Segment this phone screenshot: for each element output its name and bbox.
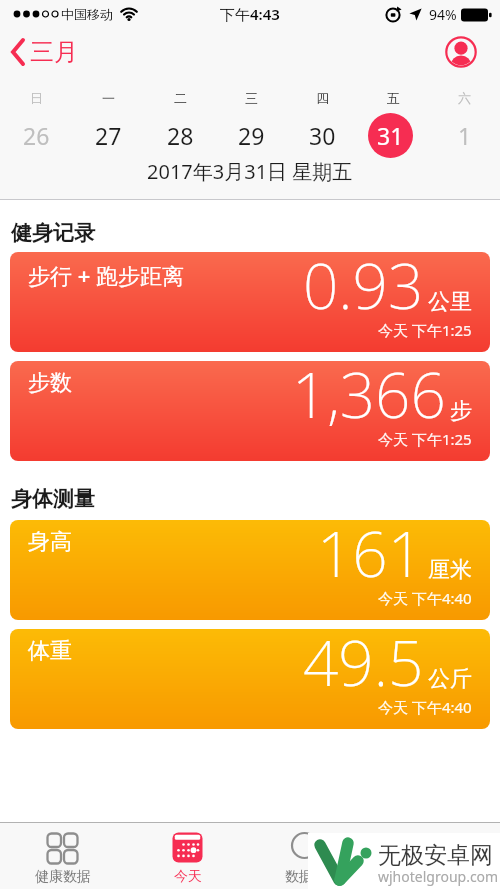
staticText: 三月 — [30, 37, 78, 67]
button[interactable]: 今天 — [125, 823, 250, 889]
button[interactable]: 健康数据 — [0, 823, 125, 889]
staticText: 下午4:43 — [220, 4, 280, 24]
staticText: 中国移动 — [61, 6, 113, 22]
staticText: 27 — [95, 120, 122, 151]
staticText: 31 — [377, 120, 404, 151]
button[interactable]: 27 — [72, 108, 144, 162]
staticText: 今天 下午4:40 — [378, 588, 472, 608]
button[interactable]: 体重 — [10, 629, 490, 729]
staticText: 1 — [458, 120, 472, 151]
staticText: 公里 — [428, 288, 472, 316]
staticText: 身体测量 — [11, 486, 95, 512]
button[interactable]: 29 — [216, 108, 287, 162]
staticText: 94% — [429, 5, 457, 24]
button[interactable]: 26 — [0, 108, 72, 162]
button[interactable]: 1 — [429, 108, 500, 162]
staticText: 体重 — [28, 637, 72, 665]
button[interactable]: 28 — [144, 108, 216, 162]
staticText: 今天 — [174, 868, 202, 886]
staticText: 49.5 — [303, 629, 424, 704]
staticText: 健康数据 — [35, 868, 91, 886]
staticText: 厘米 — [428, 556, 472, 584]
staticText: 28 — [167, 120, 194, 151]
staticText: 健身记录 — [11, 220, 95, 246]
button[interactable]: 步行 + 跑步距离 — [10, 252, 490, 352]
staticText: 日 — [30, 90, 43, 106]
staticText: 步数 — [28, 369, 72, 397]
staticText: 0.93 — [303, 252, 424, 327]
staticText: wjhotelgroup.com — [378, 867, 499, 886]
staticText: 步行 + 跑步距离 — [28, 260, 185, 290]
staticText: 161 — [317, 520, 424, 595]
staticText: 公斤 — [428, 665, 472, 693]
staticText: 26 — [23, 120, 50, 151]
button[interactable]: 数据来源 — [250, 823, 375, 889]
button[interactable]: 30 — [287, 108, 358, 162]
button[interactable]: 身高 — [10, 520, 490, 620]
staticText: 30 — [309, 120, 336, 151]
staticText: 今天 下午4:40 — [378, 697, 472, 717]
button[interactable]: 步数 — [10, 361, 490, 461]
staticText: 无极安卓网 — [378, 841, 493, 870]
button[interactable]: 三月 — [10, 37, 78, 67]
staticText: 身高 — [28, 528, 72, 556]
staticText: 四 — [316, 90, 329, 106]
button[interactable] — [445, 36, 477, 68]
staticText: 三 — [245, 90, 258, 106]
staticText: 今天 下午1:25 — [378, 320, 472, 340]
staticText: 1,366 — [292, 361, 446, 436]
staticText: 五 — [387, 90, 400, 106]
staticText: 数据来源 — [285, 868, 341, 886]
staticText: 一 — [102, 90, 115, 106]
staticText: 29 — [238, 120, 265, 151]
staticText: 步 — [450, 397, 472, 425]
staticText: 二 — [174, 90, 187, 106]
staticText: 2017年3月31日 星期五 — [147, 158, 353, 185]
staticText: 今天 下午1:25 — [378, 429, 472, 449]
staticText: 六 — [458, 90, 471, 106]
button[interactable]: 31 — [358, 108, 429, 162]
